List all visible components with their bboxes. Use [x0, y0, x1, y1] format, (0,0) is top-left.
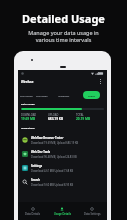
button[interactable]: Search — [18, 175, 107, 189]
staticText: Webflow Browser Tester — [31, 136, 64, 140]
staticText: Download 19.69 MB, Upload 683.19 KB — [31, 141, 79, 145]
staticText: 20.19 MB — [76, 117, 91, 121]
button[interactable]: Usage Details — [47, 202, 77, 220]
staticText: Wirefuse — [21, 80, 34, 84]
button[interactable]: Web Dev Tools — [18, 147, 107, 161]
staticText: This Week — [36, 94, 48, 97]
staticText: Settings — [31, 164, 43, 168]
staticText: TOTAL — [76, 113, 84, 117]
staticText: This Month — [20, 94, 33, 97]
button[interactable]: Webflow Browser Tester — [18, 133, 107, 147]
staticText: Web Dev Tools — [31, 150, 51, 154]
button[interactable]: Data Settings — [77, 202, 107, 220]
staticText: Download 9.60 MB Upload 8.95 KB — [31, 183, 74, 187]
button[interactable]: More options — [97, 78, 104, 85]
staticText: Detailed Usage — [22, 11, 105, 26]
button[interactable]: This Week — [34, 92, 50, 99]
staticText: Data Usage — [21, 102, 35, 105]
staticText: Today — [88, 94, 96, 97]
staticText: UPLOAD — [48, 113, 59, 117]
staticText: Usage Details — [54, 212, 71, 216]
button[interactable]: Yesterday — [56, 92, 72, 99]
staticText: Manage your data usage in various time i… — [28, 29, 99, 43]
staticText: Download 96.48 MB, Upload 24.83 KB — [31, 155, 77, 159]
staticText: DOWNLOAD — [21, 113, 37, 117]
staticText: Applications — [21, 127, 35, 130]
button[interactable]: Today — [83, 91, 100, 99]
staticText: 19.69 MB — [21, 117, 36, 121]
button[interactable]: Data Details — [18, 202, 47, 220]
staticText: 683.19 KB — [48, 117, 64, 121]
staticText: Search — [31, 178, 40, 182]
staticText: Data Details — [25, 212, 41, 216]
button[interactable]: Settings — [18, 161, 107, 175]
button[interactable]: This Month — [18, 92, 34, 99]
staticText: Yesterday — [58, 94, 70, 97]
staticText: Download 4.61 MB Upload 7.68 KB — [31, 169, 74, 173]
staticText: Data Settings — [84, 212, 101, 216]
